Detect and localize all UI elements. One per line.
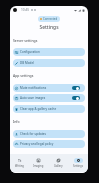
button[interactable]: Imaging xyxy=(29,154,48,172)
button[interactable]: Gallery xyxy=(48,154,68,172)
staticText: Connected xyxy=(43,17,58,21)
staticText: 10:45 xyxy=(21,8,30,12)
staticText: App settings xyxy=(13,73,88,78)
staticText: Settings xyxy=(73,164,83,168)
button[interactable]: Mute notifications xyxy=(13,84,85,92)
staticText: Check for updates xyxy=(20,132,47,136)
staticText: Info xyxy=(13,119,88,124)
button[interactable]: Tt xyxy=(10,154,29,172)
staticText: DB Model xyxy=(20,61,34,65)
staticText: Auto save images xyxy=(20,96,46,100)
staticText: Server settings xyxy=(13,38,88,43)
staticText: Writing xyxy=(15,164,24,168)
staticText: Settings xyxy=(10,24,88,31)
button[interactable]: Clear app & gallery cache xyxy=(13,105,85,113)
staticText: Imaging xyxy=(33,164,44,168)
staticText: Mute notifications xyxy=(20,86,47,90)
staticText: Clear app & gallery cache xyxy=(20,107,57,111)
button[interactable]: Privacy and legal policy xyxy=(13,140,85,148)
button[interactable]: Auto save images xyxy=(13,94,85,102)
button[interactable]: Connected xyxy=(38,16,60,22)
button[interactable]: Check for updates xyxy=(13,130,85,138)
staticText: Privacy and legal policy xyxy=(20,142,54,146)
staticText: Configuration xyxy=(20,50,40,54)
button[interactable]: Configuration xyxy=(13,48,85,56)
staticText: Gallery xyxy=(54,164,63,168)
staticText: Tt xyxy=(18,158,22,163)
button[interactable]: DB Model xyxy=(13,59,85,67)
button[interactable]: Settings xyxy=(68,154,88,172)
